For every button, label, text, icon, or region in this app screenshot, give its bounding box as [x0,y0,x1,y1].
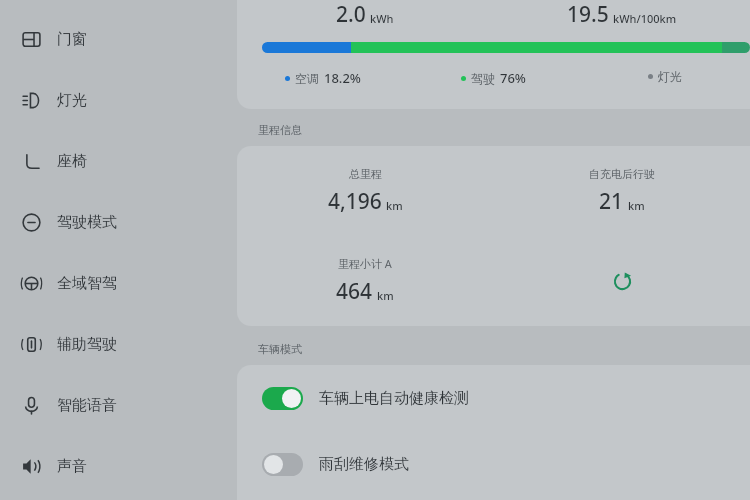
staticText: 464 [336,277,373,306]
staticText: 总里程 [349,167,382,181]
staticText: km [628,198,645,213]
staticText: 里程信息 [258,123,302,137]
button[interactable]: 智能语音 [0,375,230,436]
staticText: 4,196 [328,187,382,216]
staticText: kWh [370,11,394,26]
staticText: 门窗 [57,30,87,49]
staticText: 智能语音 [57,396,117,415]
button[interactable]: 辅助驾驶 [0,314,230,375]
staticText: 全域智驾 [57,274,117,293]
staticText: 里程小计 A [338,256,392,271]
staticText: 空调 [295,71,319,86]
staticText: km [386,198,403,213]
staticText: 自充电后行驶 [589,167,655,181]
button[interactable]: 声音 [0,436,230,497]
staticText: 车辆模式 [258,342,302,356]
staticText: 21 [599,187,624,216]
staticText: 76% [500,69,526,87]
staticText: km [377,288,394,303]
staticText: 声音 [57,457,87,476]
staticText: 19.5 [567,0,609,29]
staticText: 灯光 [57,91,87,110]
staticText: 灯光 [658,69,682,84]
button[interactable]: 灯光 [0,70,230,131]
staticText: 2.0 [336,0,366,29]
button[interactable]: 车辆上电自动健康检测 [237,365,750,431]
button[interactable]: 驾驶模式 [0,192,230,253]
staticText: kWh/100km [613,11,677,26]
staticText: 车辆上电自动健康检测 [319,389,469,408]
button[interactable]: 雨刮维修模式 [237,431,750,497]
staticText: 座椅 [57,152,87,171]
staticText: 雨刮维修模式 [319,455,409,474]
staticText: 驾驶 [471,71,495,86]
button[interactable]: 座椅 [0,131,230,192]
button[interactable]: 全域智驾 [0,253,230,314]
staticText: 18.2% [324,69,361,87]
staticText: 辅助驾驶 [57,335,117,354]
button[interactable]: 重置里程小计 [605,264,639,298]
staticText: 驾驶模式 [57,213,117,232]
button[interactable]: 门窗 [0,9,230,70]
